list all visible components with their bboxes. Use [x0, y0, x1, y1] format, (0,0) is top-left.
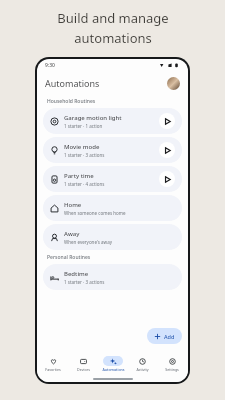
- button[interactable]: Activity: [128, 356, 156, 372]
- staticText: Home: [64, 201, 82, 209]
- button[interactable]: Run routine: [159, 113, 175, 129]
- button[interactable]: Party time: [43, 166, 182, 192]
- staticText: Bedtime: [64, 270, 89, 278]
- staticText: When everyone's away: [64, 239, 112, 245]
- staticText: 1 starter · 3 actions: [64, 279, 105, 285]
- staticText: Build and manage: [57, 9, 169, 27]
- button[interactable]: Account: [167, 77, 180, 90]
- staticText: When someone comes home: [64, 210, 126, 216]
- button[interactable]: Automations: [99, 356, 127, 372]
- button[interactable]: Run routine: [159, 142, 175, 158]
- button[interactable]: Settings: [158, 356, 186, 372]
- staticText: Movie mode: [64, 143, 100, 151]
- staticText: 1 starter · 3 actions: [64, 152, 105, 158]
- staticText: automations: [74, 29, 152, 47]
- button[interactable]: Devices: [69, 356, 97, 372]
- staticText: Favorites: [45, 367, 61, 372]
- staticText: 1 starter · 4 actions: [64, 181, 105, 187]
- staticText: Automations: [102, 367, 125, 372]
- button[interactable]: Add: [147, 328, 182, 344]
- staticText: Automations: [45, 77, 100, 89]
- staticText: Activity: [136, 367, 149, 372]
- staticText: Away: [64, 230, 80, 238]
- staticText: Garage motion light: [64, 114, 122, 122]
- staticText: Household Routines: [47, 98, 96, 105]
- staticText: 9:30: [45, 62, 55, 69]
- button[interactable]: Movie mode: [43, 137, 182, 163]
- button[interactable]: Run routine: [159, 171, 175, 187]
- staticText: Personal Routines: [47, 254, 91, 261]
- staticText: Devices: [77, 367, 90, 372]
- button[interactable]: Home: [43, 195, 182, 221]
- button[interactable]: Bedtime: [43, 264, 182, 290]
- button[interactable]: Away: [43, 224, 182, 250]
- staticText: Party time: [64, 172, 94, 180]
- button[interactable]: Favorites: [39, 356, 67, 372]
- staticText: Add: [164, 333, 175, 340]
- staticText: 1 starter · 1 action: [64, 123, 103, 129]
- button[interactable]: Garage motion light: [43, 108, 182, 134]
- staticText: Settings: [165, 367, 179, 372]
